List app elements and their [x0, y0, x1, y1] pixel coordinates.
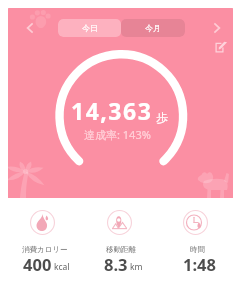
staticText: 今月 [145, 23, 161, 33]
staticText: 8.3 [104, 253, 128, 275]
staticText: 歩 [156, 110, 168, 125]
staticText: 14,363 [71, 95, 153, 126]
staticText: km [130, 261, 143, 273]
staticText: 消費カロリー [22, 245, 68, 254]
staticText: kcal [54, 261, 70, 273]
button[interactable]: Edit note [208, 35, 232, 59]
staticText: 移動距離 [106, 245, 136, 254]
staticText: 時間 [190, 245, 205, 254]
staticText: 400 [23, 253, 52, 275]
button[interactable]: 消費カロリー [4, 209, 81, 279]
button[interactable]: 今日 [58, 19, 121, 37]
staticText: 1:48 [183, 253, 216, 275]
button[interactable]: Next day [203, 14, 231, 42]
button[interactable]: 今月 [121, 19, 185, 37]
button[interactable]: 時間 [157, 209, 233, 279]
button[interactable]: Previous day [16, 14, 44, 42]
staticText: 今日 [82, 23, 98, 33]
staticText: 達成率: 143% [84, 127, 151, 142]
button[interactable]: 移動距離 [81, 209, 157, 279]
